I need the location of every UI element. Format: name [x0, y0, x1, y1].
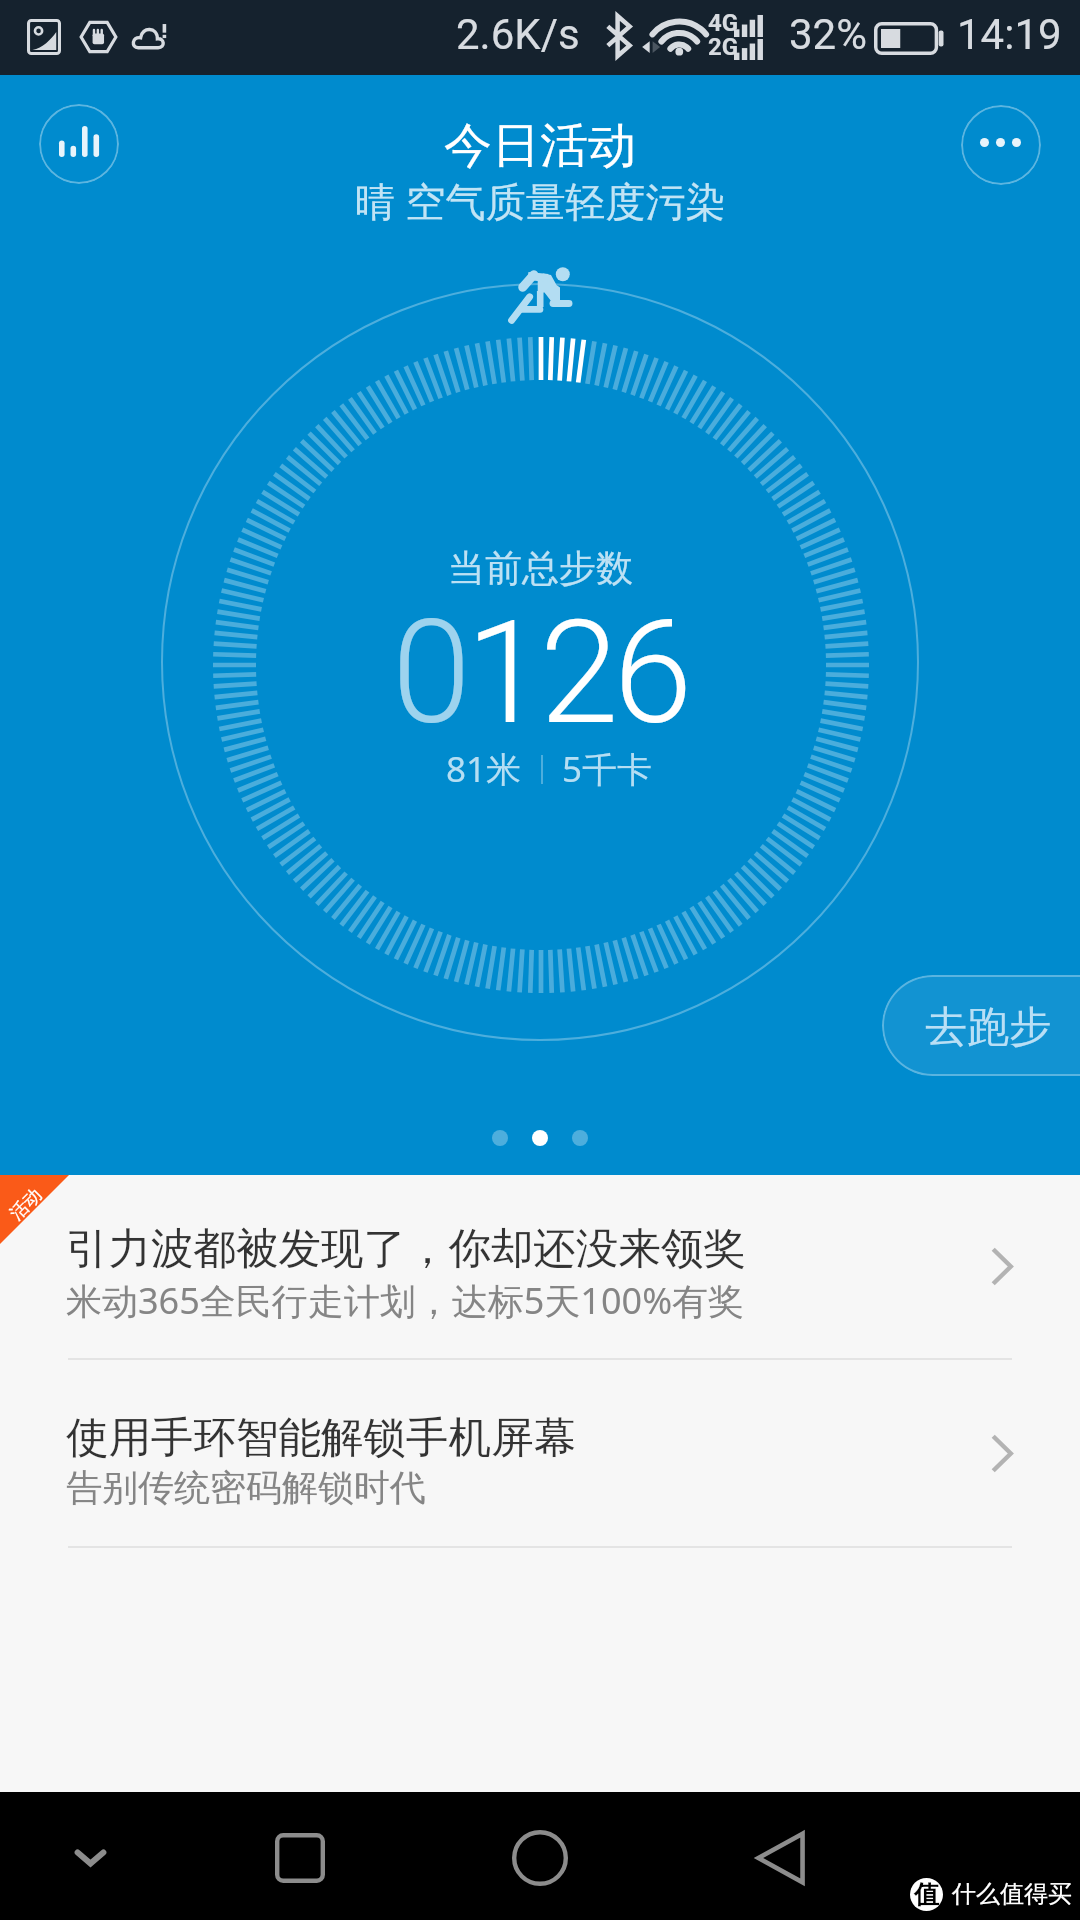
staticText: 14:19	[957, 10, 1062, 59]
button[interactable]: Hide keyboard	[50, 1818, 130, 1898]
staticText: 告别传统密码解锁时代	[66, 1465, 426, 1510]
button[interactable]: Recent apps	[260, 1818, 340, 1898]
staticText: 活动	[5, 1184, 47, 1225]
staticText: 去跑步	[925, 1001, 1051, 1054]
staticText: 晴 空气质量轻度污染	[355, 173, 726, 228]
staticText: 2.6K/s	[456, 10, 580, 59]
staticText: 米动365全民行走计划，达标5天100%有奖	[66, 1276, 745, 1325]
staticText: 今日活动	[444, 116, 636, 176]
staticText: 当前总步数	[448, 545, 633, 592]
button[interactable]: 引力波都被发现了，你却还没来领奖	[0, 1175, 1080, 1358]
staticText: 81米	[446, 745, 522, 793]
staticText: 0	[392, 590, 466, 756]
button[interactable]: Statistics	[39, 104, 119, 184]
button[interactable]: 使用手环智能解锁手机屏幕	[0, 1360, 1080, 1546]
staticText: 5千卡	[562, 745, 653, 793]
button[interactable]: Back	[740, 1818, 820, 1898]
staticText: 什么值得买	[952, 1879, 1072, 1909]
button[interactable]: 去跑步	[882, 975, 1080, 1076]
staticText: 2G	[708, 33, 739, 61]
staticText: 32%	[789, 10, 867, 59]
button[interactable]: Home	[500, 1818, 580, 1898]
staticText: 引力波都被发现了，你却还没来领奖	[66, 1222, 746, 1276]
staticText: 126	[466, 590, 688, 756]
button[interactable]: More options	[961, 105, 1041, 185]
staticText: 使用手环智能解锁手机屏幕	[66, 1411, 576, 1465]
staticText: 值	[914, 1879, 939, 1910]
staticText: 4G	[708, 9, 739, 37]
